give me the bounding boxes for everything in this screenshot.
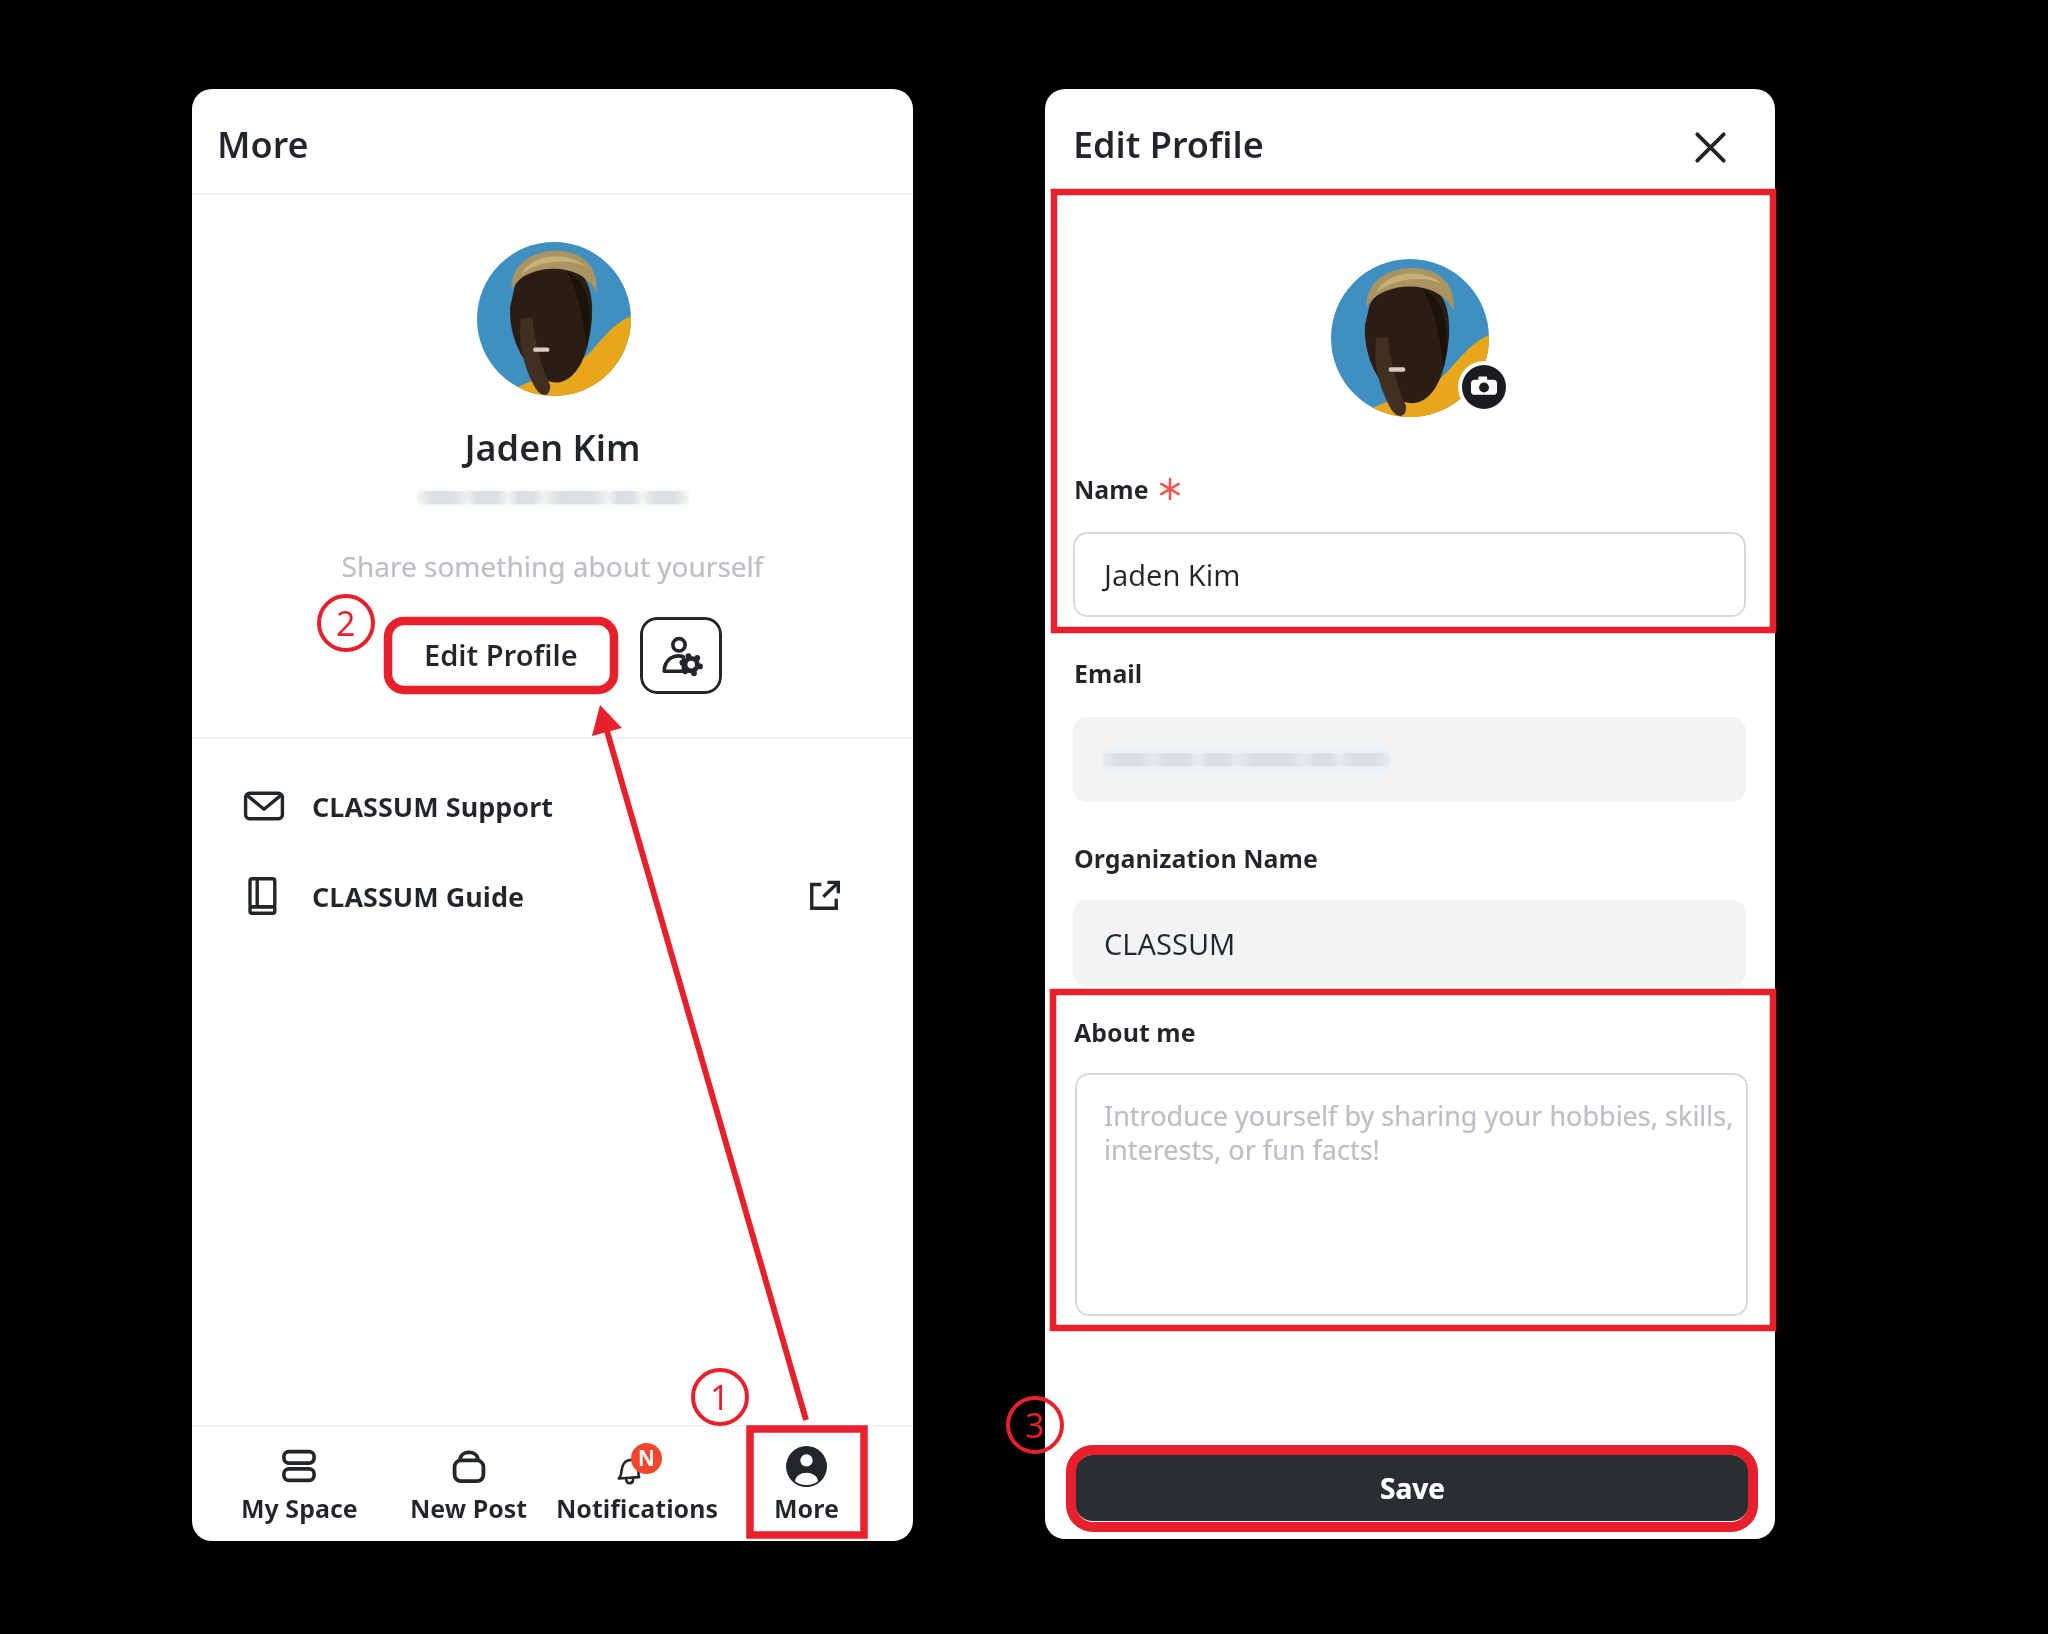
button[interactable]: My Space	[214, 1426, 384, 1541]
staticText: 3	[1025, 1402, 1045, 1448]
staticText: Notifications	[556, 1491, 719, 1525]
staticText: More	[217, 120, 309, 169]
staticText: Share something about yourself	[192, 547, 913, 585]
staticText: Edit Profile	[1073, 120, 1264, 169]
staticText: Save	[1380, 1469, 1445, 1507]
button[interactable]: Save	[1075, 1455, 1749, 1521]
staticText: 1	[710, 1374, 730, 1420]
staticText: 2	[336, 600, 356, 646]
button[interactable]: Change profile photo	[1462, 365, 1506, 409]
staticText: Email	[1074, 656, 1143, 690]
staticText: About me	[1074, 1015, 1196, 1049]
button[interactable]: More	[722, 1426, 891, 1541]
staticText: Edit Profile	[424, 635, 578, 674]
staticText: Name	[1074, 472, 1149, 506]
button[interactable]: Jaden Kim	[1073, 532, 1746, 617]
staticText: CLASSUM Guide	[312, 878, 525, 915]
staticText: CLASSUM	[1104, 924, 1236, 963]
button[interactable]: Introduce yourself by sharing your hobbi…	[1075, 1073, 1748, 1316]
staticText: N	[638, 1444, 655, 1473]
button[interactable]: Close	[1682, 119, 1738, 175]
button[interactable]: CLASSUM Support	[192, 778, 913, 834]
button[interactable]: Open in browser	[807, 879, 841, 913]
staticText: More	[774, 1491, 839, 1525]
button[interactable]: Account settings	[640, 617, 722, 694]
staticText: Organization Name	[1074, 841, 1318, 875]
staticText: CLASSUM Support	[312, 788, 553, 825]
button[interactable]: CLASSUM Guide	[192, 868, 913, 924]
staticText: Jaden Kim	[192, 423, 913, 472]
staticText: Introduce yourself by sharing your hobbi…	[1104, 1097, 1740, 1168]
button[interactable]: Edit Profile	[388, 619, 614, 690]
staticText: Jaden Kim	[1104, 555, 1241, 594]
button[interactable]: New Post	[384, 1426, 553, 1541]
staticText: My Space	[241, 1491, 358, 1525]
staticText: New Post	[410, 1491, 528, 1525]
button[interactable]: N	[553, 1426, 722, 1541]
